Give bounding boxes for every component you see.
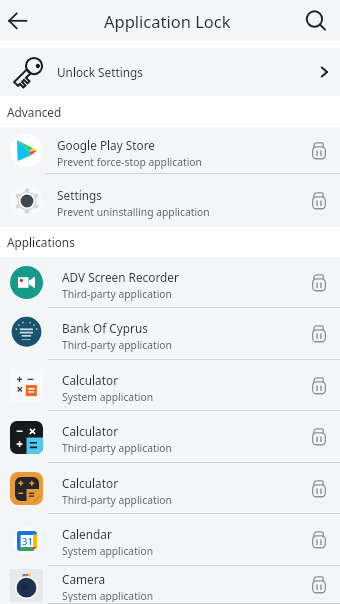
button[interactable]: Lock Calculator	[302, 411, 340, 463]
staticText: Third-party application	[62, 441, 172, 455]
button[interactable]: ADV Screen Recorder	[0, 257, 340, 308]
staticText: Calculator	[62, 372, 119, 388]
staticText: Applications	[7, 234, 75, 250]
button[interactable]: Google Play Store	[0, 127, 340, 174]
button[interactable]: Settings	[0, 174, 340, 227]
staticText: Calculator	[62, 423, 119, 439]
staticText: Third-party application	[62, 493, 172, 507]
staticText: Calculator	[62, 475, 119, 491]
button[interactable]: Bank Of Cyprus	[0, 308, 340, 360]
button[interactable]: Unlock Settings	[0, 48, 340, 96]
button[interactable]: Calculator	[0, 463, 340, 514]
button[interactable]: Calculator	[0, 411, 340, 463]
staticText: Advanced	[7, 104, 62, 120]
staticText: Camera	[62, 571, 106, 587]
staticText: Third-party application	[62, 287, 172, 301]
button[interactable]: 31	[0, 514, 340, 566]
button[interactable]: Lock Calendar	[302, 514, 340, 566]
staticText: System application	[62, 589, 154, 603]
staticText: 31	[22, 535, 33, 548]
staticText: Prevent force-stop application	[57, 155, 202, 169]
staticText: Bank Of Cyprus	[62, 320, 148, 336]
staticText: Google Play Store	[57, 137, 155, 153]
staticText: Third-party application	[62, 338, 172, 352]
button[interactable]: Lock Settings	[302, 174, 340, 227]
button[interactable]: Camera	[0, 566, 340, 604]
button[interactable]: Back	[0, 0, 38, 40]
staticText: Prevent uninstalling application	[57, 205, 210, 219]
staticText: Calendar	[62, 526, 112, 542]
button[interactable]: Lock Camera	[302, 566, 340, 604]
staticText: Unlock Settings	[57, 64, 144, 80]
button[interactable]: Calculator	[0, 360, 340, 411]
button[interactable]: Lock Google Play Store	[302, 127, 340, 174]
button[interactable]: Lock Calculator	[302, 360, 340, 411]
button[interactable]: Search	[296, 0, 336, 41]
button[interactable]: Lock Bank Of Cyprus	[302, 308, 340, 360]
staticText: Settings	[57, 187, 102, 203]
staticText: Application Lock	[104, 10, 231, 32]
staticText: System application	[62, 390, 154, 404]
staticText: System application	[62, 544, 154, 558]
staticText: ADV Screen Recorder	[62, 269, 179, 285]
button[interactable]: Lock ADV Screen Recorder	[302, 257, 340, 308]
button[interactable]: Lock Calculator	[302, 463, 340, 514]
